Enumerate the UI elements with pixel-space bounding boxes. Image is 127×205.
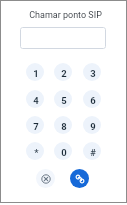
button[interactable]: 4 [26, 90, 44, 108]
staticText: 2 [61, 68, 67, 79]
staticText: 4 [33, 95, 39, 106]
staticText: 0 [61, 147, 67, 158]
button[interactable]: 8 [54, 116, 72, 134]
button[interactable]: 2 [54, 63, 72, 81]
button[interactable] [20, 27, 106, 49]
button[interactable]: 1 [26, 63, 44, 81]
button[interactable]: 3 [83, 63, 101, 81]
staticText: # [90, 147, 96, 158]
staticText: 6 [90, 95, 96, 106]
staticText: 3 [90, 68, 96, 79]
button[interactable]: # [83, 142, 101, 160]
staticText: 9 [90, 121, 96, 132]
staticText: * [34, 147, 39, 158]
staticText: 1 [33, 68, 39, 79]
button[interactable]: * [26, 142, 44, 160]
staticText: 8 [61, 121, 67, 132]
button[interactable]: 9 [83, 116, 101, 134]
staticText: Chamar ponto SIP [2, 10, 127, 21]
button[interactable]: 7 [26, 116, 44, 134]
button[interactable]: 5 [54, 90, 72, 108]
button[interactable]: Clear [36, 169, 55, 188]
button[interactable]: 6 [83, 90, 101, 108]
staticText: 5 [61, 95, 67, 106]
button[interactable]: Call [70, 169, 89, 188]
staticText: 7 [33, 121, 39, 132]
button[interactable]: 0 [54, 142, 72, 160]
